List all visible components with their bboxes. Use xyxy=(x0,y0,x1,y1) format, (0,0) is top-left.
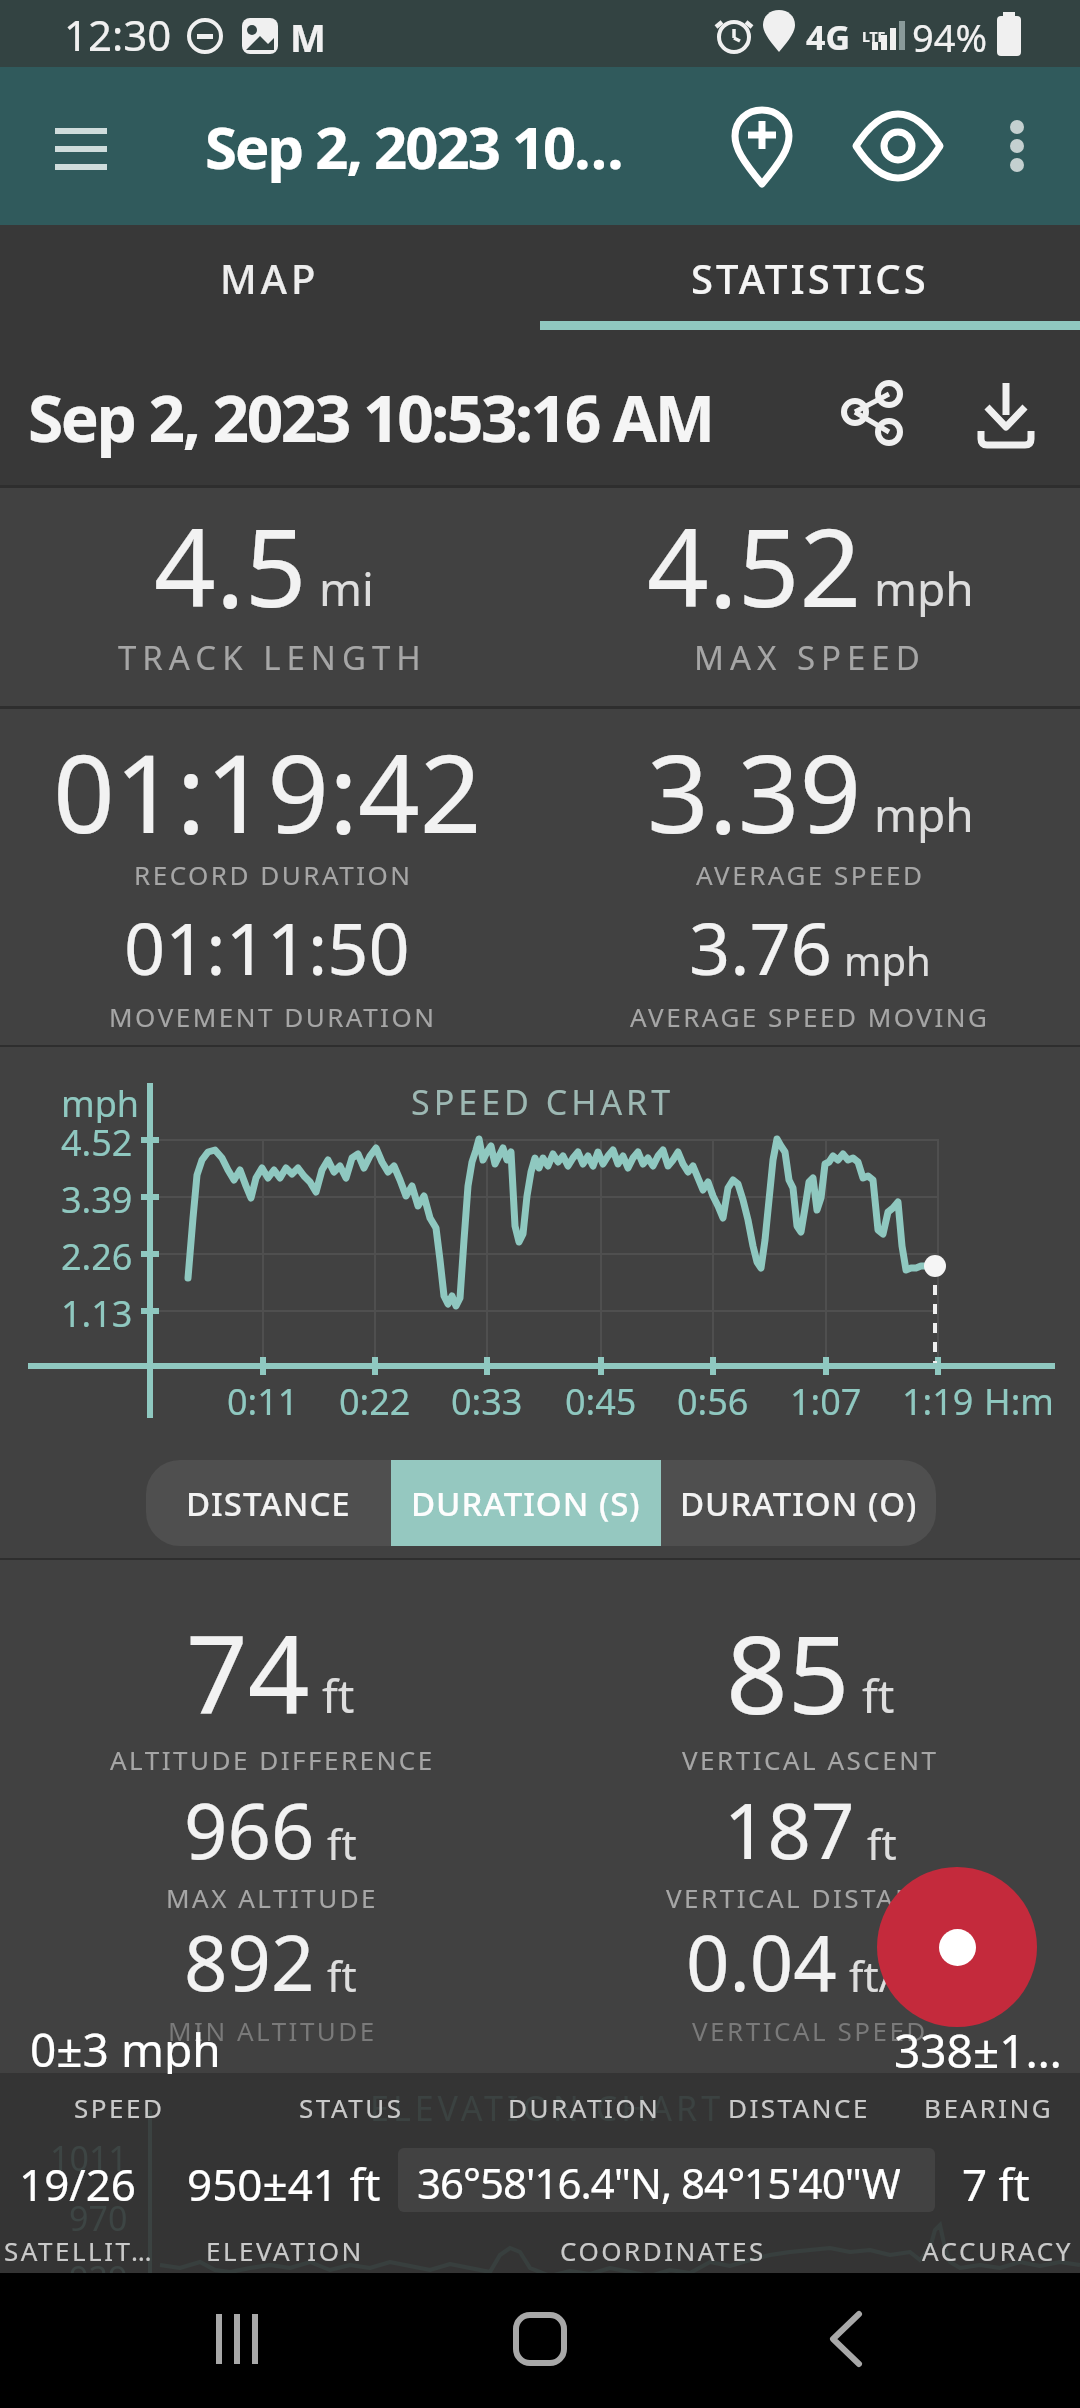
staticText: ft/m xyxy=(849,1947,934,2004)
staticText: 1:19 xyxy=(902,1377,974,1425)
staticText: MAX ALTITUDE xyxy=(166,1880,379,1915)
staticText: ft xyxy=(327,1947,357,2004)
staticText: ft xyxy=(867,1815,897,1872)
staticText: mph xyxy=(844,933,931,987)
button[interactable]: DURATION xyxy=(464,2085,704,2129)
staticText: STATUS xyxy=(299,2090,404,2125)
staticText: 950±41 ft xyxy=(187,2154,381,2210)
staticText: DURATION (S) xyxy=(411,1481,641,1526)
staticText: M xyxy=(290,11,326,63)
staticText: 12:30 xyxy=(64,6,172,63)
button[interactable] xyxy=(783,2280,903,2400)
staticText: 0:33 xyxy=(451,1377,523,1425)
button[interactable] xyxy=(480,2280,600,2400)
staticText: Sep 2, 2023 10… xyxy=(205,107,622,186)
staticText: LTE xyxy=(862,27,886,46)
button[interactable]: STATUS xyxy=(231,2085,471,2129)
staticText: BEARING xyxy=(924,2090,1054,2125)
staticText: 3.39 xyxy=(61,1175,133,1219)
staticText: mph xyxy=(874,557,974,620)
staticText: 0:45 xyxy=(565,1377,637,1425)
button[interactable] xyxy=(977,106,1057,186)
staticText: SPEED xyxy=(74,2090,165,2125)
staticText: 2.26 xyxy=(61,1232,133,1276)
staticText: 892 xyxy=(184,1910,315,2014)
staticText: 0.04 xyxy=(686,1910,837,2014)
button[interactable] xyxy=(838,86,958,206)
staticText: 966 xyxy=(184,1778,315,1882)
staticText: 4.52 xyxy=(647,492,862,639)
staticText: RECORD DURATION xyxy=(134,857,413,892)
staticText: DISTANCE xyxy=(728,2090,870,2125)
staticText: 4G xyxy=(806,14,851,60)
staticText: 4.5 xyxy=(154,492,307,639)
button[interactable] xyxy=(877,1867,1037,2027)
staticText: 929 xyxy=(69,2255,128,2273)
button[interactable]: DURATION (S) xyxy=(391,1460,661,1546)
button[interactable]: DISTANCE xyxy=(679,2085,919,2129)
staticText: ft xyxy=(862,1664,895,1727)
staticText: Sep 2, 2023 10:53:16 AM xyxy=(28,374,713,461)
staticText: 338±1… xyxy=(894,2019,1062,2075)
staticText: COORDINATES xyxy=(560,2233,766,2268)
button[interactable] xyxy=(40,92,120,200)
staticText: mi xyxy=(319,557,374,620)
staticText: H:m xyxy=(984,1377,1054,1425)
staticText: 85 xyxy=(726,1599,850,1746)
staticText: 970 xyxy=(69,2195,128,2239)
staticText: 1.13 xyxy=(61,1289,133,1333)
staticText: 94% xyxy=(912,11,988,63)
staticText: VERTICAL ASCENT xyxy=(682,1742,939,1777)
button[interactable]: MAP xyxy=(0,225,540,330)
staticText: TRACK LENGTH xyxy=(118,635,427,680)
staticText: 1:07 xyxy=(790,1377,862,1425)
staticText: 187 xyxy=(724,1778,855,1882)
button[interactable]: BEARING xyxy=(869,2085,1080,2129)
staticText: 1011 xyxy=(50,2135,128,2179)
staticText: ACCURACY xyxy=(922,2233,1073,2268)
button[interactable] xyxy=(398,2148,935,2212)
staticText: ALTITUDE DIFFERENCE xyxy=(110,1742,435,1777)
staticText: 36°58'16.4"N, 84°15'40"W xyxy=(417,2154,900,2210)
staticText: MAP xyxy=(220,251,320,305)
staticText: ft xyxy=(322,1664,355,1727)
staticText: 0:56 xyxy=(677,1377,749,1425)
staticText: 0:22 xyxy=(339,1377,411,1425)
staticText: 4.52 xyxy=(61,1118,133,1162)
button[interactable] xyxy=(817,357,927,467)
staticText: 0±3 mph xyxy=(30,2018,221,2074)
staticText: 19/26 xyxy=(19,2154,137,2210)
button[interactable] xyxy=(951,357,1061,467)
staticText: VERTICAL DISTANCE xyxy=(666,1880,954,1915)
button[interactable]: STATISTICS xyxy=(540,225,1080,330)
staticText: MAX SPEED xyxy=(694,635,926,680)
staticText: DISTANCE xyxy=(186,1481,351,1526)
staticText: DURATION xyxy=(508,2090,661,2125)
button[interactable]: SPEED xyxy=(0,2085,239,2129)
staticText: 3.76 xyxy=(689,898,832,996)
staticText: MOVEMENT DURATION xyxy=(109,999,437,1034)
staticText: VERTICAL SPEED xyxy=(692,2013,928,2048)
staticText: mph xyxy=(874,783,974,846)
staticText: SPEED CHART xyxy=(411,1079,675,1123)
staticText: ELEVATION CHART xyxy=(370,2085,725,2129)
staticText: 7 ft xyxy=(962,2154,1030,2210)
button[interactable]: DURATION (O) xyxy=(661,1460,936,1546)
staticText: mph xyxy=(61,1079,140,1123)
staticText: AVERAGE SPEED xyxy=(696,857,925,892)
staticText: STATISTICS xyxy=(691,251,929,305)
staticText: MIN ALTITUDE xyxy=(168,2013,377,2048)
staticText: AVERAGE SPEED MOVING xyxy=(630,999,990,1034)
staticText: ELEVATION xyxy=(206,2233,364,2268)
staticText: ft xyxy=(327,1815,357,1872)
staticText: 0:11 xyxy=(227,1377,299,1425)
button[interactable] xyxy=(702,86,822,206)
button[interactable]: DISTANCE xyxy=(146,1460,391,1546)
staticText: 01:11:50 xyxy=(124,898,410,996)
button[interactable] xyxy=(177,2280,297,2400)
staticText: DURATION (O) xyxy=(680,1481,918,1526)
staticText: SATELLIT… xyxy=(4,2233,155,2268)
staticText: 3.39 xyxy=(647,718,862,865)
staticText: 01:19:42 xyxy=(53,718,482,865)
staticText: 74 xyxy=(186,1599,310,1746)
